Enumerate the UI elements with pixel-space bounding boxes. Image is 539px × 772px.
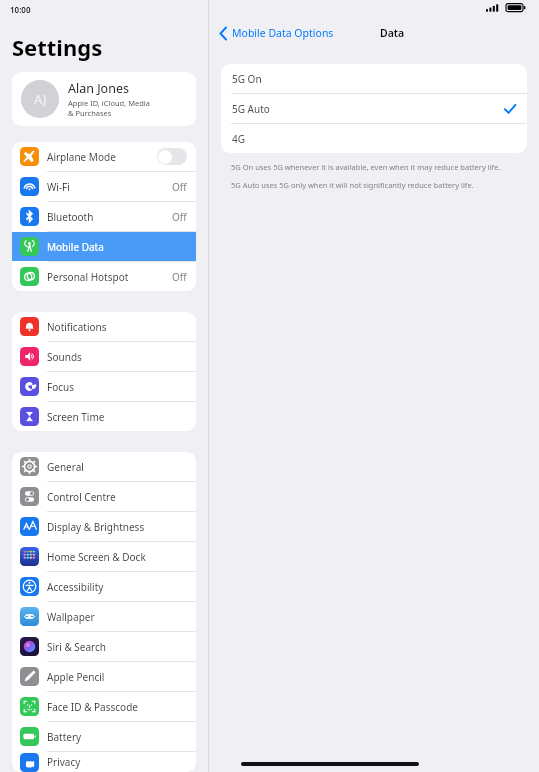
- staticText: Apple Pencil: [47, 670, 187, 684]
- staticText: Privacy: [47, 755, 187, 769]
- staticText: Wi-Fi: [47, 180, 172, 194]
- staticText: Data: [380, 26, 405, 40]
- staticText: Off: [172, 270, 187, 284]
- staticText: 5G Auto uses 5G only when it will not si…: [231, 180, 474, 190]
- button[interactable]: Wallpaper: [12, 602, 196, 631]
- button[interactable]: Apple Pencil: [12, 662, 196, 691]
- staticText: Off: [172, 180, 187, 194]
- button[interactable]: 4G: [221, 124, 527, 153]
- staticText: Screen Time: [47, 410, 187, 424]
- button[interactable]: Airplane Mode toggle: [157, 148, 187, 165]
- button[interactable]: Screen Time: [12, 402, 196, 431]
- button[interactable]: Home Screen & Dock: [12, 542, 196, 571]
- button[interactable]: Mobile Data Options: [209, 23, 340, 43]
- button[interactable]: Wi-Fi: [12, 172, 196, 201]
- button[interactable]: Bluetooth: [12, 202, 196, 231]
- staticText: Battery: [47, 730, 187, 744]
- staticText: 5G Auto: [232, 102, 504, 116]
- button[interactable]: Control Centre: [12, 482, 196, 511]
- staticText: Bluetooth: [47, 210, 172, 224]
- staticText: AJ: [34, 90, 47, 108]
- staticText: Siri & Search: [47, 640, 187, 654]
- staticText: Personal Hotspot: [47, 270, 172, 284]
- staticText: Off: [172, 210, 187, 224]
- staticText: Mobile Data Options: [232, 26, 334, 40]
- staticText: Wallpaper: [47, 610, 187, 624]
- button[interactable]: Privacy: [12, 752, 196, 772]
- staticText: 4G: [232, 132, 516, 146]
- staticText: Airplane Mode: [47, 150, 157, 164]
- staticText: Alan Jones: [68, 80, 129, 97]
- button[interactable]: Battery: [12, 722, 196, 751]
- staticText: Display & Brightness: [47, 520, 187, 534]
- staticText: 10:00: [10, 4, 31, 15]
- button[interactable]: Personal Hotspot: [12, 262, 196, 291]
- button[interactable]: Accessibility: [12, 572, 196, 601]
- button[interactable]: Face ID & Passcode: [12, 692, 196, 721]
- button[interactable]: Display & Brightness: [12, 512, 196, 541]
- button[interactable]: Siri & Search: [12, 632, 196, 661]
- button[interactable]: AJ: [12, 72, 196, 126]
- staticText: Settings: [12, 32, 103, 62]
- staticText: Apple ID, iCloud, Media & Purchases: [68, 98, 150, 118]
- staticText: Notifications: [47, 320, 187, 334]
- staticText: Focus: [47, 380, 187, 394]
- button[interactable]: Airplane Mode: [12, 142, 196, 171]
- button[interactable]: Notifications: [12, 312, 196, 341]
- staticText: Home Screen & Dock: [47, 550, 187, 564]
- staticText: Sounds: [47, 350, 187, 364]
- staticText: General: [47, 460, 187, 474]
- staticText: Accessibility: [47, 580, 187, 594]
- button[interactable]: 5G Auto: [221, 94, 527, 123]
- staticText: Mobile Data: [47, 240, 187, 254]
- button[interactable]: 5G On: [221, 64, 527, 93]
- staticText: 5G On uses 5G whenever it is available, …: [231, 162, 501, 172]
- staticText: Face ID & Passcode: [47, 700, 187, 714]
- button[interactable]: Mobile Data: [12, 232, 196, 261]
- staticText: 5G On: [232, 72, 516, 86]
- button[interactable]: Sounds: [12, 342, 196, 371]
- button[interactable]: Focus: [12, 372, 196, 401]
- staticText: Control Centre: [47, 490, 187, 504]
- button[interactable]: General: [12, 452, 196, 481]
